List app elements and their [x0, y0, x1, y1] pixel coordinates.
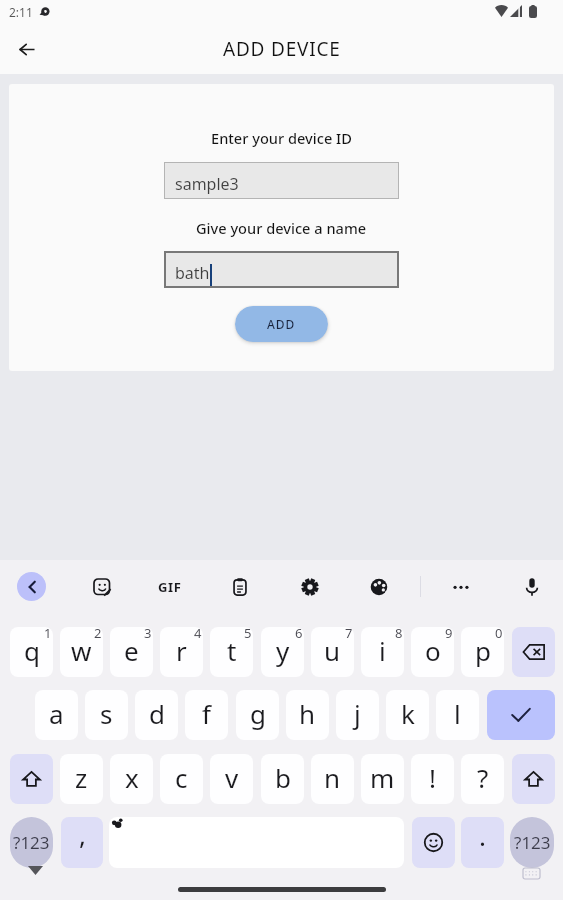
button[interactable]: u: [311, 627, 354, 677]
button[interactable]: l: [436, 690, 479, 740]
button[interactable]: GIF: [152, 569, 188, 605]
button[interactable]: b: [261, 754, 304, 804]
staticText: o: [425, 633, 441, 668]
staticText: 9: [445, 627, 453, 642]
button[interactable]: Stickers: [84, 569, 120, 605]
staticText: bath: [175, 262, 210, 284]
staticText: n: [324, 760, 341, 795]
button[interactable]: c: [160, 754, 203, 804]
staticText: g: [250, 696, 266, 731]
staticText: k: [401, 696, 415, 731]
staticText: 1: [44, 627, 52, 642]
button[interactable]: p: [461, 627, 504, 677]
staticText: h: [299, 696, 316, 731]
staticText: r: [176, 633, 187, 668]
button[interactable]: o: [411, 627, 454, 677]
button[interactable]: y: [261, 627, 304, 677]
button[interactable]: Enter: [487, 690, 555, 740]
button[interactable]: t: [210, 627, 253, 677]
staticText: sample3: [175, 173, 239, 195]
button[interactable]: Back: [7, 30, 47, 70]
staticText: 8: [395, 627, 403, 642]
staticText: ?123: [514, 831, 551, 854]
button[interactable]: ?: [461, 754, 504, 804]
staticText: y: [276, 633, 290, 668]
button[interactable]: Settings: [292, 569, 328, 605]
button[interactable]: Shift: [512, 754, 555, 804]
button[interactable]: q: [10, 627, 53, 677]
staticText: x: [125, 760, 139, 795]
staticText: p: [475, 633, 491, 668]
button[interactable]: a: [35, 690, 78, 740]
staticText: GIF: [158, 578, 182, 596]
button[interactable]: sample3: [164, 162, 399, 199]
button[interactable]: w: [60, 627, 103, 677]
button[interactable]: f: [185, 690, 228, 740]
button[interactable]: Theme: [361, 569, 397, 605]
button[interactable]: Clipboard: [222, 569, 258, 605]
staticText: ADD DEVICE: [223, 36, 341, 62]
button[interactable]: e: [110, 627, 153, 677]
button[interactable]: z: [60, 754, 103, 804]
button[interactable]: Voice input: [514, 569, 550, 605]
staticText: Give your device a name: [196, 218, 367, 238]
staticText: v: [225, 760, 239, 795]
staticText: d: [149, 696, 165, 731]
button[interactable]: .: [461, 817, 504, 868]
staticText: c: [175, 760, 188, 795]
staticText: s: [100, 696, 113, 731]
staticText: 0: [495, 627, 503, 642]
staticText: m: [370, 760, 395, 795]
button[interactable]: g: [236, 690, 279, 740]
button[interactable]: r: [160, 627, 203, 677]
staticText: l: [454, 696, 461, 731]
staticText: w: [71, 633, 92, 668]
staticText: 2: [94, 627, 102, 642]
button[interactable]: x: [110, 754, 153, 804]
staticText: q: [24, 633, 40, 668]
button[interactable]: v: [210, 754, 253, 804]
button[interactable]: Symbols: [10, 817, 53, 868]
button[interactable]: Space: [109, 817, 404, 868]
staticText: ?: [477, 760, 489, 795]
staticText: j: [354, 696, 361, 731]
staticText: 7: [345, 627, 353, 642]
staticText: 6: [295, 627, 303, 642]
staticText: e: [124, 633, 139, 668]
button[interactable]: n: [311, 754, 354, 804]
staticText: b: [275, 760, 291, 795]
staticText: i: [379, 633, 386, 668]
button[interactable]: ADD: [235, 306, 328, 342]
button[interactable]: bath: [164, 251, 399, 288]
button[interactable]: Backspace: [512, 627, 555, 677]
button[interactable]: i: [361, 627, 404, 677]
staticText: t: [227, 633, 237, 668]
staticText: ?123: [13, 831, 50, 854]
staticText: .: [479, 818, 486, 853]
staticText: Enter your device ID: [211, 128, 352, 148]
staticText: 5: [244, 627, 252, 642]
staticText: u: [324, 633, 341, 668]
staticText: 4: [194, 627, 202, 642]
button[interactable]: s: [85, 690, 128, 740]
staticText: 3: [144, 627, 152, 642]
staticText: 2:11: [9, 4, 33, 20]
staticText: !: [429, 760, 436, 795]
button[interactable]: !: [411, 754, 454, 804]
staticText: ADD: [267, 316, 296, 332]
button[interactable]: More options: [443, 569, 479, 605]
staticText: z: [75, 760, 88, 795]
staticText: ,: [79, 817, 86, 852]
button[interactable]: Close keyboard: [17, 572, 46, 601]
button[interactable]: Symbols: [510, 817, 554, 868]
button[interactable]: k: [386, 690, 429, 740]
button[interactable]: d: [135, 690, 178, 740]
button[interactable]: j: [336, 690, 379, 740]
button[interactable]: h: [286, 690, 329, 740]
button[interactable]: ,: [61, 817, 103, 868]
button[interactable]: Emoji: [412, 817, 455, 868]
button[interactable]: Shift: [10, 754, 53, 804]
button[interactable]: m: [361, 754, 404, 804]
staticText: f: [202, 696, 211, 731]
staticText: a: [49, 696, 64, 731]
